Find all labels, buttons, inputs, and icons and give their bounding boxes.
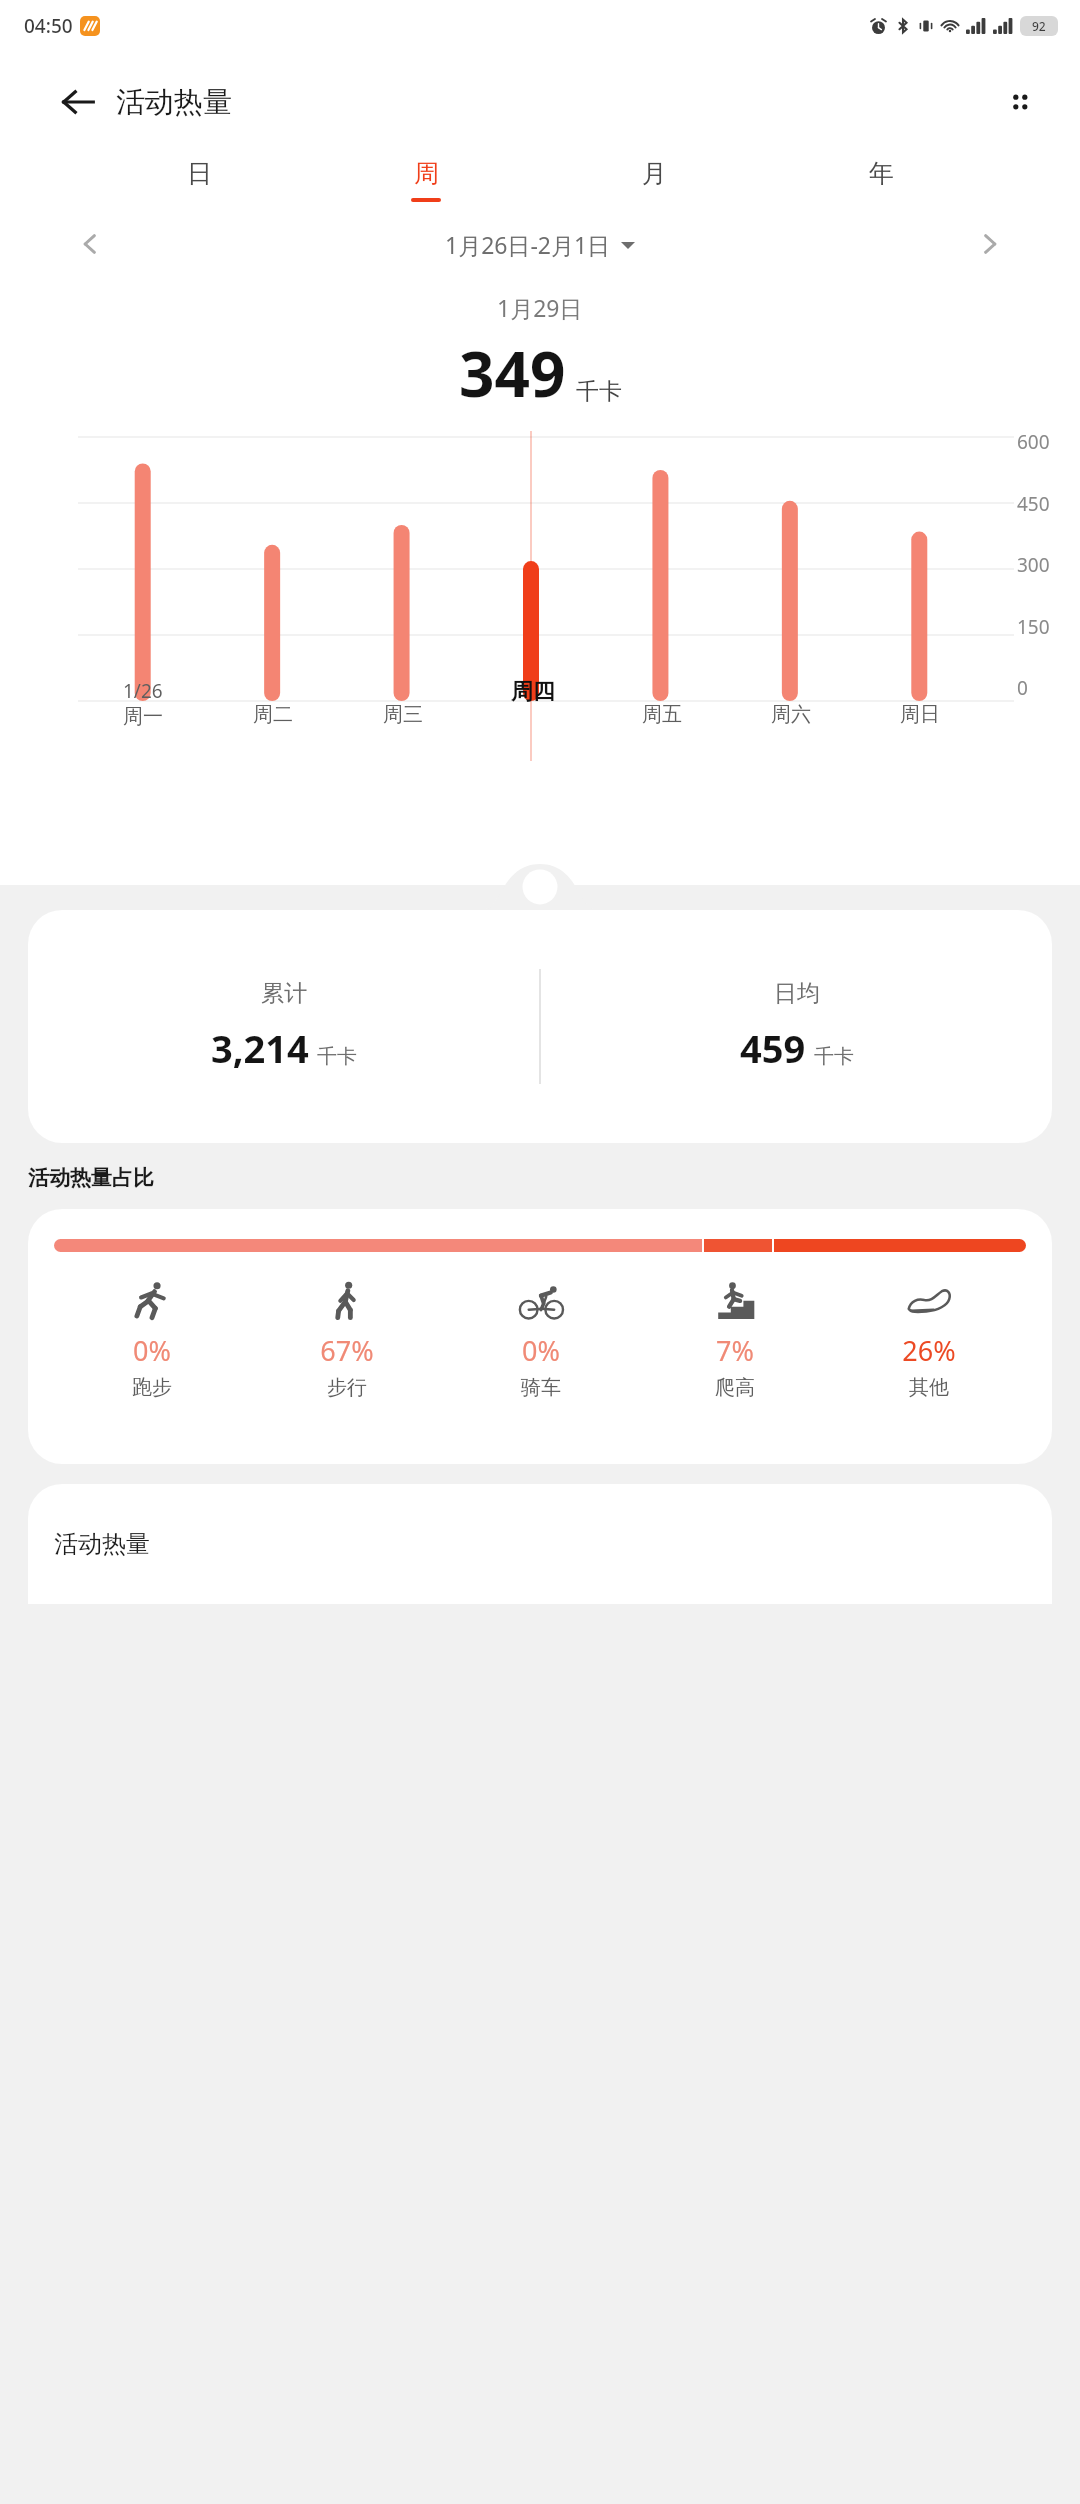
staticText: 周日 xyxy=(900,702,940,727)
button[interactable]: 周四 xyxy=(468,678,597,706)
button[interactable]: 67% xyxy=(249,1278,444,1400)
staticText: 其他 xyxy=(909,1375,949,1400)
staticText: 周一 xyxy=(123,704,163,729)
button[interactable]: 周三 xyxy=(338,678,468,727)
staticText: 1/26 xyxy=(123,678,163,704)
staticText: 0% xyxy=(522,1332,560,1369)
staticText: 周二 xyxy=(253,702,293,727)
staticText: 周五 xyxy=(642,702,682,727)
staticText: 1月26日-2月1日 xyxy=(445,229,611,260)
button[interactable]: 0% xyxy=(444,1278,638,1400)
button[interactable]: 活动热量 xyxy=(28,1484,1052,1604)
button[interactable]: 周五 xyxy=(597,678,726,727)
staticText: 千卡 xyxy=(576,377,622,406)
staticText: 千卡 xyxy=(814,1044,854,1069)
button[interactable]: 周六 xyxy=(726,678,855,727)
staticText: 3,214 xyxy=(211,1022,309,1074)
staticText: 67% xyxy=(320,1332,374,1369)
button[interactable]: 月 xyxy=(625,152,683,208)
staticText: 累计 xyxy=(261,979,307,1008)
button[interactable]: 周二 xyxy=(208,678,338,727)
staticText: 300 xyxy=(1017,552,1050,578)
staticText: 年 xyxy=(869,158,894,189)
button[interactable]: 0% xyxy=(28,1209,1052,1464)
staticText: 459 xyxy=(740,1022,806,1074)
button[interactable]: 上一周 xyxy=(68,222,112,266)
button[interactable]: 1/26 xyxy=(78,678,208,729)
button[interactable]: 下一周 xyxy=(968,222,1012,266)
staticText: 26% xyxy=(902,1332,956,1369)
staticText: 150 xyxy=(1017,614,1050,640)
staticText: 0 xyxy=(1017,675,1028,701)
staticText: 跑步 xyxy=(132,1375,172,1400)
button[interactable]: 1月26日-2月1日 xyxy=(445,229,635,260)
staticText: 周 xyxy=(414,158,439,189)
button[interactable]: 周 xyxy=(397,152,455,208)
button[interactable]: 7% xyxy=(638,1278,832,1400)
staticText: 1月29日 xyxy=(497,292,583,323)
staticText: 04:50 xyxy=(24,13,73,39)
button[interactable]: 26% xyxy=(832,1278,1026,1400)
button[interactable]: 周日 xyxy=(855,678,984,727)
staticText: 7% xyxy=(716,1332,754,1369)
staticText: 千卡 xyxy=(317,1044,357,1069)
staticText: 月 xyxy=(642,158,667,189)
staticText: 0% xyxy=(133,1332,171,1369)
staticText: 活动热量 xyxy=(116,84,232,121)
staticText: 活动热量 xyxy=(54,1529,150,1559)
staticText: 349 xyxy=(459,331,566,415)
staticText: 步行 xyxy=(327,1375,367,1400)
staticText: 活动热量占比 xyxy=(28,1165,154,1191)
staticText: 周四 xyxy=(511,678,555,706)
button[interactable]: 0% xyxy=(54,1278,249,1400)
staticText: 92 xyxy=(1032,18,1046,34)
button[interactable]: 日 xyxy=(170,152,228,208)
staticText: 日 xyxy=(187,158,212,189)
button[interactable]: 更多 xyxy=(996,78,1044,126)
staticText: 周三 xyxy=(383,702,423,727)
staticText: 450 xyxy=(1017,491,1050,517)
button[interactable]: 返回 xyxy=(54,78,102,126)
staticText: 600 xyxy=(1017,429,1050,455)
staticText: 爬高 xyxy=(715,1375,755,1400)
staticText: 周六 xyxy=(771,702,811,727)
button[interactable]: 累计 xyxy=(28,910,1052,1143)
staticText: 日均 xyxy=(774,979,820,1008)
staticText: 骑车 xyxy=(521,1375,561,1400)
button[interactable]: 年 xyxy=(852,152,910,208)
